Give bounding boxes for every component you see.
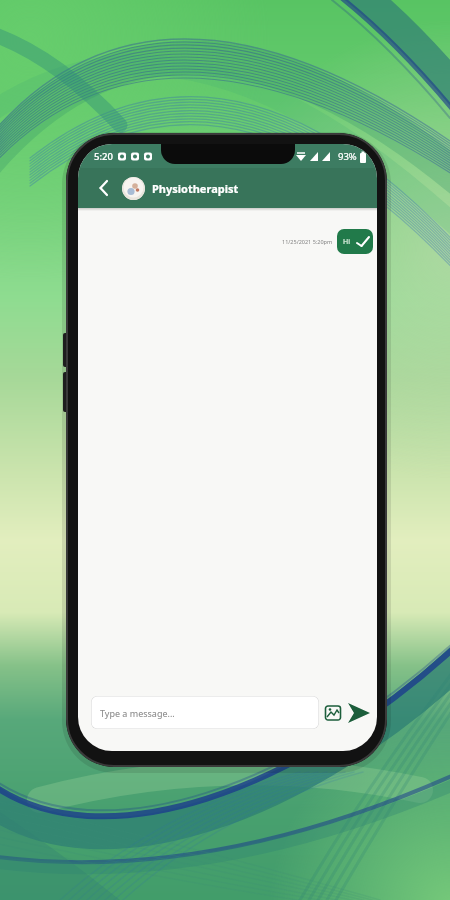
button[interactable] [324, 704, 342, 722]
staticText: 11/25/2021 5:20pm [282, 238, 333, 245]
button[interactable] [92, 176, 116, 200]
staticText: Hi [343, 237, 350, 247]
button[interactable]: Type a message... [91, 696, 319, 729]
staticText: Physiotherapist [152, 181, 239, 196]
button[interactable] [347, 701, 371, 725]
staticText: 5:20 [94, 150, 113, 163]
staticText: Type a message... [100, 707, 175, 719]
button[interactable]: Hi [337, 229, 373, 254]
staticText: 93% [338, 150, 357, 163]
